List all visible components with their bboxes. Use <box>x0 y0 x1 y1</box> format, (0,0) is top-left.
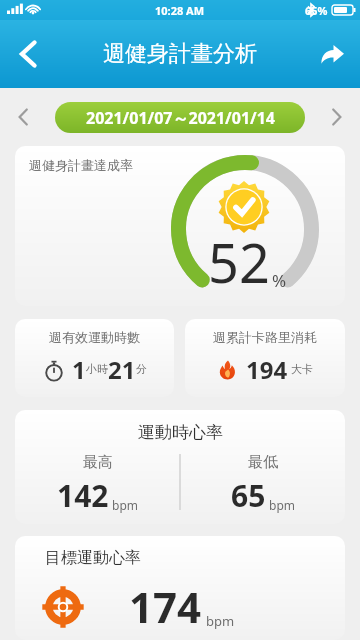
button[interactable]: 週累計卡路里消耗 <box>185 319 345 397</box>
staticText: 最低 <box>248 453 278 472</box>
staticText: 目標運動心率 <box>45 548 141 568</box>
staticText: 10:28 AM <box>155 3 205 18</box>
button[interactable]: 週有效運動時數 <box>15 319 174 397</box>
staticText: 小時 <box>86 362 108 376</box>
staticText: 21 <box>108 353 136 386</box>
staticText: 大卡 <box>291 362 313 376</box>
staticText: 52 <box>208 225 270 299</box>
staticText: 1 <box>72 353 86 386</box>
button[interactable]: 週健身計畫達成率 <box>15 146 345 306</box>
staticText: 194 <box>246 353 288 386</box>
staticText: 週健身計畫達成率 <box>29 157 133 173</box>
staticText: bpm <box>206 612 235 630</box>
staticText: 142 <box>57 475 109 516</box>
staticText: 最高 <box>83 453 113 472</box>
staticText: bpm <box>112 497 138 513</box>
button[interactable]: Back <box>0 26 56 82</box>
button[interactable]: 運動時心率 <box>15 410 345 524</box>
staticText: 週有效運動時數 <box>49 329 140 345</box>
staticText: 週累計卡路里消耗 <box>213 329 317 345</box>
staticText: bpm <box>269 497 295 513</box>
button[interactable]: Previous week <box>0 94 46 140</box>
staticText: 運動時心率 <box>138 422 223 443</box>
button[interactable]: Next week <box>314 94 360 140</box>
staticText: 65 <box>231 475 266 516</box>
staticText: % <box>272 269 287 292</box>
staticText: 分 <box>136 362 147 376</box>
button[interactable]: 目標運動心率 <box>15 536 345 640</box>
staticText: 週健身計畫分析 <box>103 40 257 68</box>
staticText: 65% <box>305 3 328 18</box>
staticText: 2021/01/07～2021/01/14 <box>86 107 275 129</box>
button[interactable]: 2021/01/07～2021/01/14 <box>55 102 305 133</box>
button[interactable]: Share <box>304 26 360 82</box>
staticText: 174 <box>129 578 202 635</box>
